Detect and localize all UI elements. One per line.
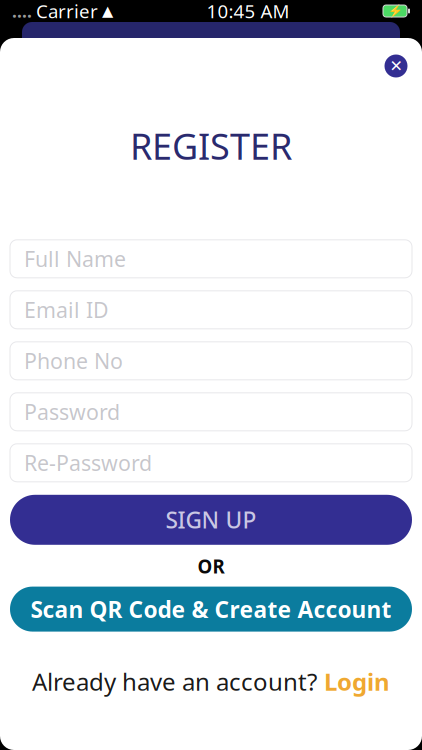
staticText: 10:45 AM [206, 0, 289, 23]
button[interactable]: Close [379, 49, 413, 83]
staticText: ▲ [102, 3, 113, 19]
staticText: Phone No [24, 347, 123, 375]
staticText: Email ID [24, 296, 109, 324]
staticText: Re-Password [24, 449, 152, 477]
staticText: Password [24, 398, 120, 426]
staticText: OR [197, 554, 224, 579]
button[interactable]: Scan QR Code & Create Account [10, 587, 412, 632]
staticText: SIGN UP [165, 505, 256, 535]
button[interactable]: Already have an account? [0, 660, 422, 703]
staticText: ✕ [389, 57, 402, 75]
staticText: Scan QR Code & Create Account [30, 594, 391, 624]
staticText: Full Name [24, 245, 126, 273]
staticText: .... [12, 0, 32, 22]
staticText: ⚡ [387, 4, 402, 18]
button[interactable]: SIGN UP [10, 495, 412, 545]
staticText: Login [324, 666, 390, 697]
staticText: Already have an account? [32, 666, 317, 697]
staticText: Carrier [36, 0, 98, 23]
staticText: REGISTER [130, 122, 292, 170]
